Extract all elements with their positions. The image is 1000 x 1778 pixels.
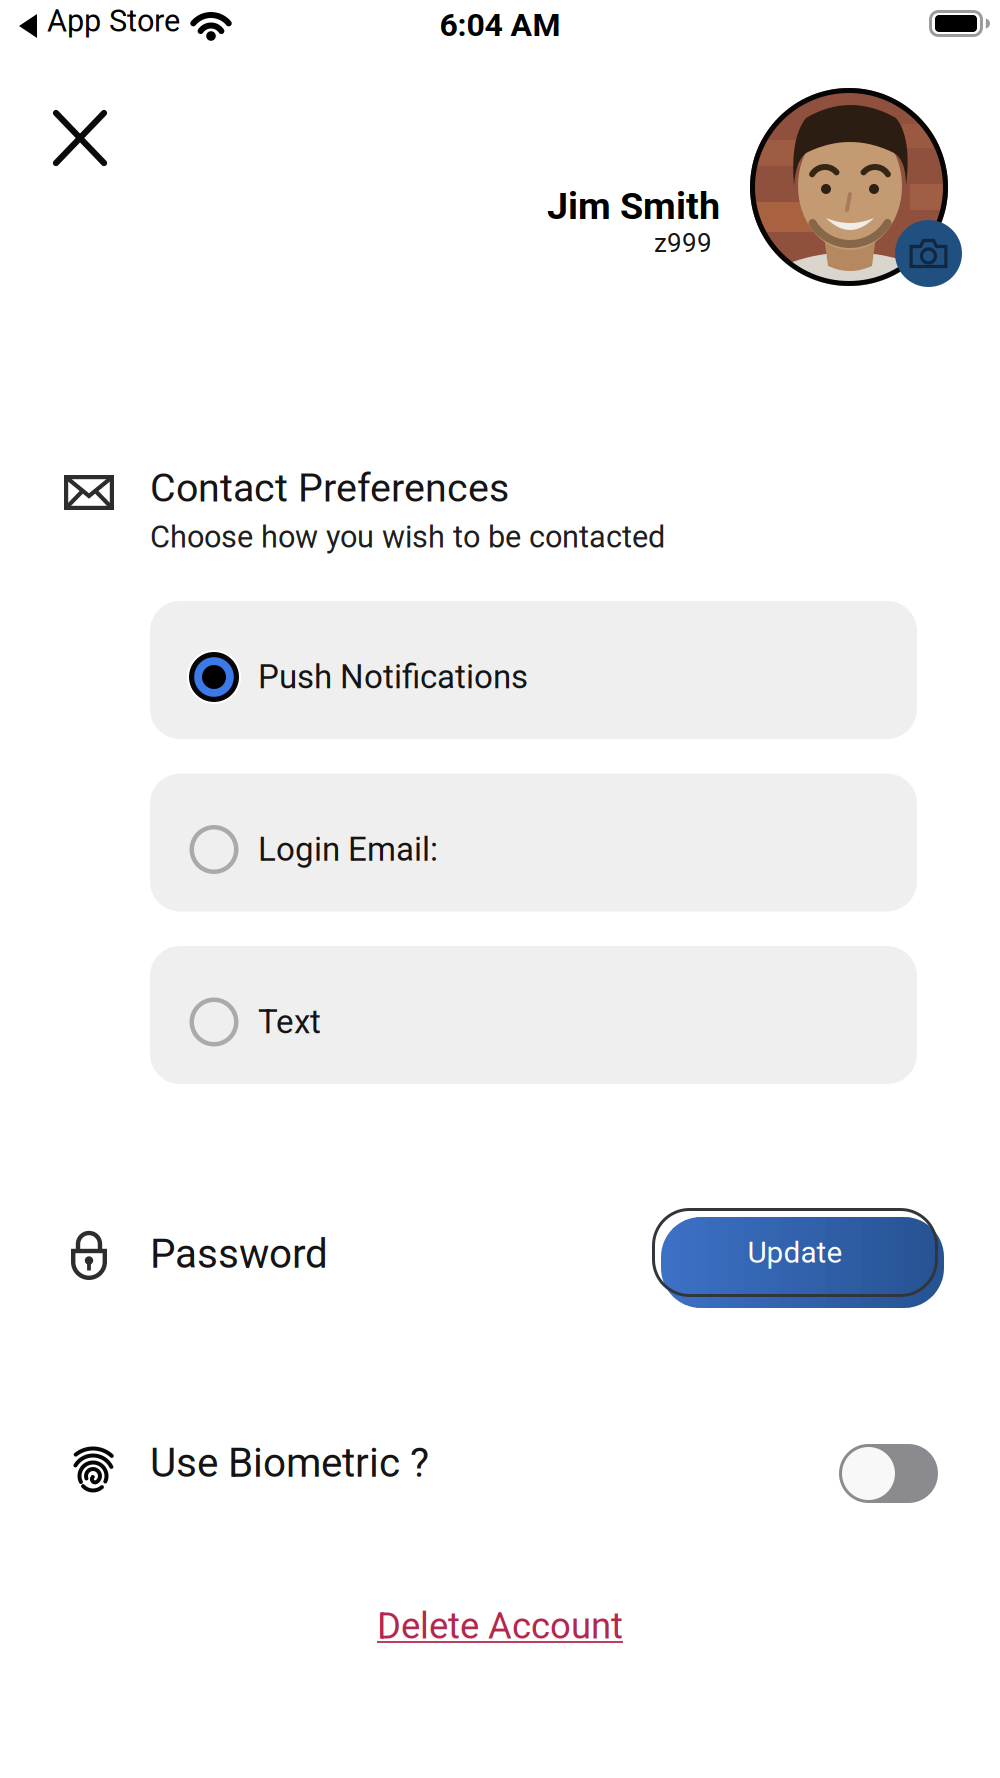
staticText: Text	[258, 1003, 321, 1041]
staticText: Contact Preferences	[150, 465, 509, 511]
staticText: Delete Account	[377, 1605, 623, 1647]
button[interactable]: Update	[652, 1208, 952, 1312]
button[interactable]: Use Biometric	[839, 1444, 938, 1503]
staticText: App Store	[47, 3, 180, 39]
button[interactable]: Delete Account	[300, 1601, 700, 1651]
staticText: Update	[747, 1235, 842, 1270]
button[interactable]: Push Notifications	[150, 601, 917, 739]
staticText: Choose how you wish to be contacted	[150, 519, 665, 555]
staticText: Push Notifications	[258, 658, 528, 696]
staticText: z999	[654, 228, 712, 258]
button[interactable]: Login Email:	[150, 773, 917, 911]
button[interactable]: Back to App Store	[0, 0, 250, 48]
staticText: Use Biometric ?	[150, 1439, 429, 1487]
staticText: Login Email:	[258, 830, 438, 869]
staticText: Password	[150, 1230, 328, 1278]
staticText: 6:04 AM	[439, 6, 560, 44]
staticText: Jim Smith	[547, 184, 720, 228]
button[interactable]: Close	[53, 110, 107, 166]
button[interactable]: Text	[150, 946, 917, 1084]
button[interactable]: Change profile photo	[750, 88, 964, 290]
